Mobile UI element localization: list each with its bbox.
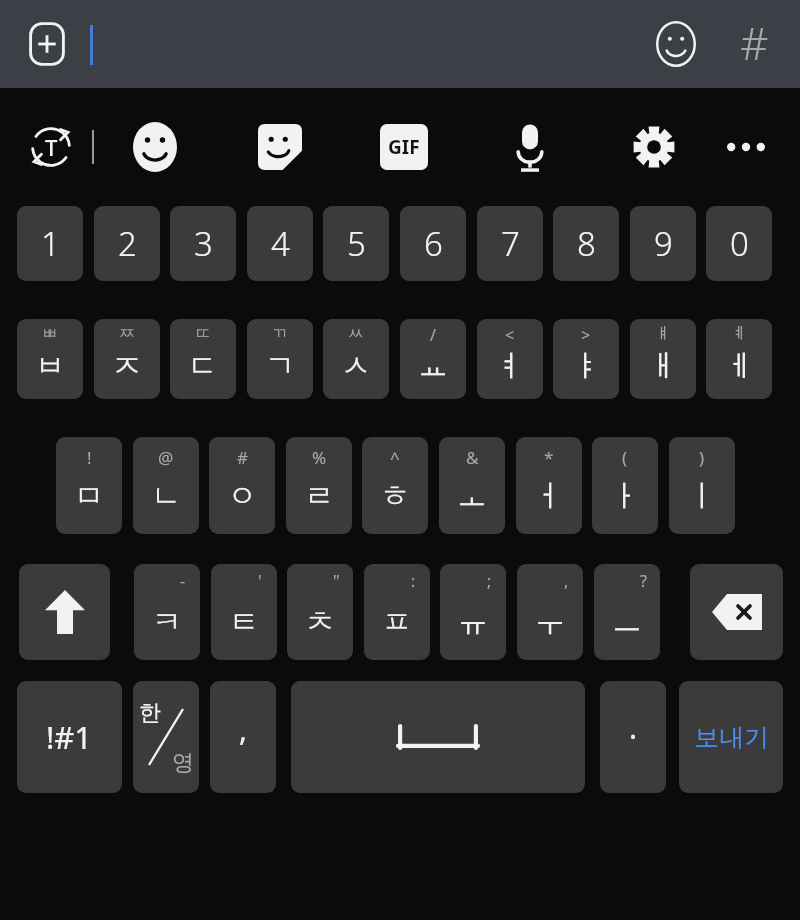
staticText: ) — [699, 446, 705, 469]
button[interactable]: Translate — [24, 120, 78, 174]
button[interactable]: ) — [669, 437, 735, 534]
staticText: 8 — [577, 221, 596, 266]
staticText: ㅖ — [731, 324, 747, 344]
button[interactable]: > — [553, 319, 619, 399]
staticText: 7 — [501, 221, 520, 266]
button[interactable]: ! — [56, 437, 122, 534]
button[interactable]: , — [210, 681, 276, 793]
staticText: 0 — [730, 221, 749, 266]
button[interactable]: ㅆ — [323, 319, 389, 399]
button[interactable]: 8 — [553, 206, 619, 281]
staticText: ㅜ — [535, 603, 565, 641]
button[interactable]: : — [364, 564, 430, 660]
button[interactable]: Space — [291, 681, 585, 793]
staticText: ㅂ — [35, 347, 65, 385]
button[interactable]: Switch Korean English — [133, 681, 199, 793]
button[interactable]: & — [439, 437, 505, 534]
button[interactable]: 4 — [247, 206, 313, 281]
staticText: ㅊ — [305, 603, 335, 641]
staticText: ! — [87, 446, 92, 469]
button[interactable]: , — [517, 564, 583, 660]
button[interactable]: 9 — [630, 206, 696, 281]
staticText: , — [239, 709, 248, 750]
staticText: ㅕ — [495, 347, 525, 385]
button[interactable]: Emoji — [650, 18, 702, 70]
button[interactable]: More options — [720, 122, 772, 172]
button[interactable]: ㅒ — [630, 319, 696, 399]
button[interactable]: 1 — [17, 206, 83, 281]
button[interactable]: " — [287, 564, 353, 660]
button[interactable]: % — [286, 437, 352, 534]
staticText: T — [45, 132, 58, 162]
button[interactable]: @ — [133, 437, 199, 534]
button[interactable]: ^ — [362, 437, 428, 534]
staticText: ㄱ — [265, 347, 295, 385]
staticText: @ — [158, 446, 174, 469]
button[interactable]: Shift — [19, 564, 110, 660]
button[interactable]: ㅃ — [17, 319, 83, 399]
button[interactable]: Hashtag — [726, 12, 782, 74]
button[interactable]: 5 — [323, 206, 389, 281]
button[interactable]: ㅉ — [94, 319, 160, 399]
button[interactable]: ' — [211, 564, 277, 660]
staticText: ㅋ — [152, 603, 182, 641]
staticText: ㄲ — [272, 324, 288, 344]
staticText: GIF — [388, 134, 420, 160]
staticText: & — [466, 446, 479, 469]
staticText: ㅡ — [612, 603, 642, 641]
button[interactable]: ㄸ — [170, 319, 236, 399]
button[interactable]: Emoji — [128, 120, 182, 174]
staticText: ㅁ — [74, 477, 104, 515]
staticText: 9 — [654, 221, 673, 266]
button[interactable]: 7 — [477, 206, 543, 281]
staticText: 영 — [172, 749, 194, 777]
staticText: ㅠ — [458, 603, 488, 641]
button[interactable]: ㄲ — [247, 319, 313, 399]
button[interactable]: ; — [440, 564, 506, 660]
staticText: ( — [622, 446, 628, 469]
button[interactable]: !#1 — [17, 681, 122, 793]
staticText: ㄷ — [188, 347, 218, 385]
button[interactable]: 3 — [170, 206, 236, 281]
button[interactable]: Backspace — [690, 564, 783, 660]
button[interactable]: - — [134, 564, 200, 660]
button[interactable]: # — [209, 437, 275, 534]
staticText: !#1 — [46, 716, 93, 758]
staticText: ㄸ — [195, 324, 211, 344]
button[interactable]: Settings — [627, 120, 681, 174]
staticText: ㅑ — [571, 347, 601, 385]
button[interactable]: Voice input — [503, 118, 557, 176]
staticText: # — [237, 446, 248, 469]
staticText: ; — [487, 570, 492, 592]
staticText: < — [505, 324, 515, 346]
staticText: ㅔ — [724, 347, 754, 385]
button[interactable]: 6 — [400, 206, 466, 281]
staticText: ㅏ — [610, 477, 640, 515]
staticText: ㅍ — [382, 603, 412, 641]
button[interactable]: 0 — [706, 206, 772, 281]
staticText: * — [544, 446, 554, 469]
staticText: ㅓ — [534, 477, 564, 515]
button[interactable]: ㅖ — [706, 319, 772, 399]
button[interactable]: . — [600, 681, 666, 793]
staticText: 3 — [194, 221, 213, 266]
button[interactable]: ? — [594, 564, 660, 660]
button[interactable]: 보내기 — [679, 681, 783, 793]
button[interactable]: Add — [22, 18, 72, 70]
staticText: ' — [258, 570, 262, 592]
button[interactable]: ( — [592, 437, 658, 534]
staticText: ㅒ — [655, 324, 671, 344]
staticText: ㅣ — [687, 477, 717, 515]
button[interactable]: 2 — [94, 206, 160, 281]
staticText: ㅗ — [457, 477, 487, 515]
button[interactable]: / — [400, 319, 466, 399]
button[interactable]: < — [477, 319, 543, 399]
button[interactable]: Stickers — [253, 120, 307, 174]
button[interactable]: GIF — [380, 124, 428, 170]
staticText: % — [312, 446, 327, 469]
button[interactable]: * — [516, 437, 582, 534]
staticText: ㅎ — [380, 477, 410, 515]
staticText: ㅈ — [112, 347, 142, 385]
staticText: / — [430, 324, 436, 346]
staticText: # — [740, 13, 769, 73]
